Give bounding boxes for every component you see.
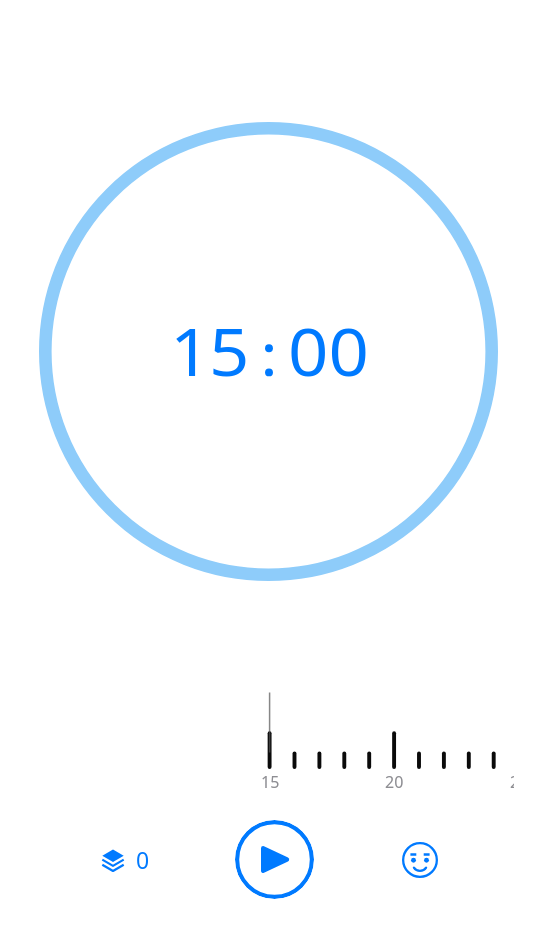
button[interactable]: 0: [92, 840, 158, 882]
staticText: 5: [209, 305, 250, 395]
staticText: 25: [510, 771, 514, 793]
button[interactable]: Mood: [395, 835, 444, 884]
staticText: 0: [136, 844, 150, 875]
staticText: 15: [261, 771, 280, 793]
button[interactable]: Start timer: [235, 820, 314, 899]
staticText: 1: [170, 305, 211, 395]
staticText: 00: [288, 305, 369, 395]
staticText: 20: [385, 771, 404, 793]
